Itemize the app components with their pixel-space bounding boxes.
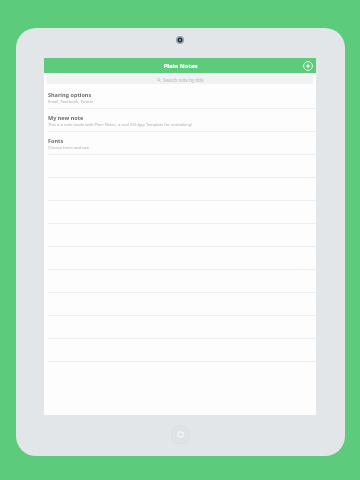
button[interactable]: Home — [171, 425, 190, 444]
staticText: Plain Notes — [163, 62, 198, 70]
button[interactable] — [44, 293, 316, 316]
button[interactable] — [44, 178, 316, 201]
staticText: Choose fonts and size — [48, 145, 90, 150]
button[interactable] — [44, 201, 316, 224]
button[interactable]: My new note — [44, 109, 316, 132]
staticText: Search note by title — [163, 77, 204, 83]
staticText: This is a note made with Plain Notes, a … — [48, 122, 193, 127]
button[interactable] — [44, 247, 316, 270]
staticText: My new note — [48, 114, 84, 121]
staticText: Sharing options — [48, 91, 92, 98]
button[interactable] — [44, 224, 316, 247]
button[interactable]: Search note by title — [47, 75, 313, 84]
button[interactable]: Sharing options — [44, 86, 316, 109]
staticText: Fonts — [48, 137, 64, 144]
button[interactable] — [44, 339, 316, 362]
button[interactable] — [44, 155, 316, 178]
button[interactable]: Add note — [302, 60, 313, 71]
button[interactable] — [44, 316, 316, 339]
staticText: Email, Facebook, Twitter — [48, 99, 94, 104]
button[interactable] — [44, 270, 316, 293]
button[interactable]: Fonts — [44, 132, 316, 155]
